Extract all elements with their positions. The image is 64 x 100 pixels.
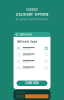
staticText: at your convenience xyxy=(15,17,48,21)
staticText: Delivery type xyxy=(16,40,37,43)
button[interactable] xyxy=(13,51,50,58)
staticText: CHOOSE xyxy=(26,8,38,12)
button[interactable] xyxy=(13,58,50,64)
button[interactable]: CONFIRM xyxy=(13,80,50,89)
staticText: Delivery xyxy=(19,33,32,36)
staticText: DELIVERY OPTION xyxy=(15,12,48,17)
button[interactable] xyxy=(13,45,50,51)
button[interactable] xyxy=(13,64,50,71)
staticText: CONFIRM xyxy=(25,81,39,85)
